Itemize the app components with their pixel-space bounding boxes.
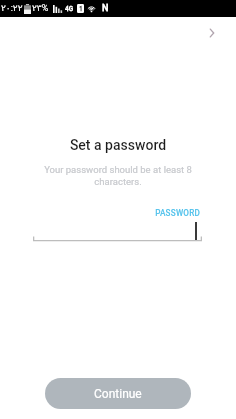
staticText: 4G <box>65 5 74 13</box>
staticText: Set a password <box>0 137 236 153</box>
button[interactable]: Next <box>199 20 224 45</box>
staticText: PASSWORD <box>28 208 200 218</box>
staticText: 1 <box>79 5 83 13</box>
staticText: ۲۰:۲۲ <box>1 3 23 14</box>
staticText: Continue <box>94 387 142 401</box>
button[interactable]: PASSWORD <box>28 203 208 247</box>
button[interactable]: Continue <box>45 378 191 409</box>
staticText: N <box>102 3 109 14</box>
staticText: ۲۳% <box>32 3 49 14</box>
staticText: Your password should be at least 8 chara… <box>41 164 195 187</box>
